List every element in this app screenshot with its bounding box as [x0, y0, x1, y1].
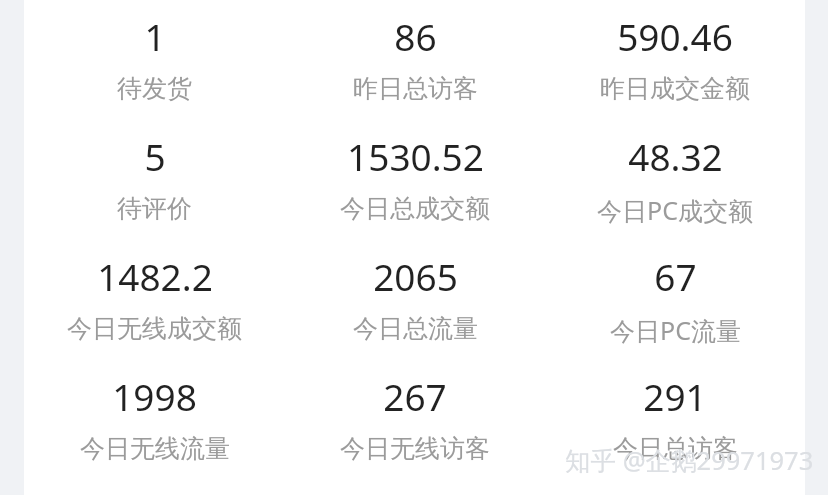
button[interactable]: 291	[545, 360, 805, 480]
button[interactable]: 2065	[285, 240, 545, 360]
staticText: 48.32	[628, 131, 723, 181]
staticText: 5	[144, 131, 166, 181]
staticText: 2065	[373, 251, 458, 301]
staticText: 267	[383, 371, 447, 421]
button[interactable]: 1998	[24, 360, 285, 480]
staticText: 待发货	[117, 73, 192, 104]
staticText: 1	[144, 11, 166, 61]
staticText: 今日无线成交额	[67, 313, 242, 344]
button[interactable]: 267	[285, 360, 545, 480]
button[interactable]: 86	[285, 0, 545, 120]
staticText: 590.46	[617, 11, 733, 61]
staticText: 今日无线流量	[80, 433, 230, 464]
button[interactable]: 1482.2	[24, 240, 285, 360]
staticText: 今日总流量	[353, 313, 478, 344]
button[interactable]: 590.46	[545, 0, 805, 120]
staticText: 今日PC流量	[610, 313, 741, 347]
staticText: 1530.52	[347, 131, 484, 181]
staticText: 67	[654, 251, 697, 301]
button[interactable]: 5	[24, 120, 285, 240]
staticText: 1482.2	[97, 251, 213, 301]
staticText: 今日无线访客	[340, 433, 490, 464]
button[interactable]: 1	[24, 0, 285, 120]
staticText: 86	[394, 11, 437, 61]
button[interactable]: 67	[545, 240, 805, 360]
staticText: 待评价	[117, 193, 192, 224]
staticText: 今日总成交额	[340, 193, 490, 224]
staticText: 今日总访客	[613, 433, 738, 464]
staticText: 1998	[112, 371, 197, 421]
staticText: 昨日总访客	[353, 73, 478, 104]
button[interactable]: 1530.52	[285, 120, 545, 240]
staticText: 今日PC成交额	[597, 193, 753, 227]
button[interactable]: 48.32	[545, 120, 805, 240]
staticText: 291	[643, 371, 707, 421]
staticText: 知乎 @企鹅29971973	[565, 443, 814, 478]
staticText: 昨日成交金额	[600, 73, 750, 104]
